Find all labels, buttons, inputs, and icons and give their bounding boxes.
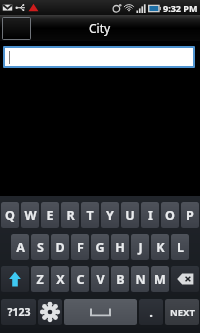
button[interactable]: Shift [1,266,29,292]
button[interactable]: F [71,234,89,260]
button[interactable]: O [161,202,179,228]
staticText: X [56,271,65,288]
button[interactable]: R [61,202,79,228]
button[interactable]: P [181,202,199,228]
staticText: K [156,239,165,256]
staticText: Y [106,207,114,224]
staticText: NEXT [170,306,195,319]
staticText: T [86,207,94,224]
staticText: N [135,271,146,288]
button[interactable]: W [21,202,39,228]
button[interactable]: Settings [38,299,62,325]
button[interactable]: ?123 [1,299,36,325]
staticText: City [89,20,111,36]
button[interactable]: . [139,299,163,325]
button[interactable]: H [111,234,129,260]
button[interactable]: B [111,266,129,292]
button[interactable]: U [121,202,139,228]
staticText: B [116,271,125,288]
staticText: A [16,239,25,256]
button[interactable]: Z [31,266,49,292]
button[interactable]: X [51,266,69,292]
button[interactable]: M [151,266,169,292]
staticText: V [96,271,105,288]
staticText: U [125,207,135,224]
staticText: F [77,239,84,256]
button[interactable]: C [71,266,89,292]
button[interactable] [5,48,193,66]
staticText: ?123 [7,305,31,319]
staticText: S [37,239,44,256]
staticText: J [138,239,143,256]
button[interactable]: I [141,202,159,228]
staticText: P [186,207,194,224]
staticText: M [154,271,166,288]
staticText: Z [36,271,44,288]
staticText: . [149,303,153,321]
staticText: D [55,239,65,256]
staticText: G [95,239,105,256]
staticText: E [46,207,54,224]
staticText: R [66,207,75,224]
button[interactable]: N [131,266,149,292]
staticText: I [148,207,153,224]
button[interactable]: Q [1,202,19,228]
button[interactable]: A [11,234,29,260]
button[interactable]: Y [101,202,119,228]
button[interactable]: E [41,202,59,228]
button[interactable]: Backspace [171,266,199,292]
staticText: L [177,239,184,256]
staticText: C [76,271,85,288]
button[interactable]: App icon [3,18,30,39]
button[interactable]: S [31,234,49,260]
button[interactable]: K [151,234,169,260]
staticText: W [24,207,37,224]
button[interactable]: G [91,234,109,260]
staticText: O [165,207,175,224]
staticText: Q [5,207,15,224]
button[interactable]: V [91,266,109,292]
button[interactable]: L [171,234,189,260]
button[interactable]: T [81,202,99,228]
button[interactable]: J [131,234,149,260]
staticText: 9:32 PM [163,2,198,14]
button[interactable]: D [51,234,69,260]
staticText: H [115,239,125,256]
button[interactable]: Space [64,299,137,325]
button[interactable]: NEXT [165,299,199,325]
